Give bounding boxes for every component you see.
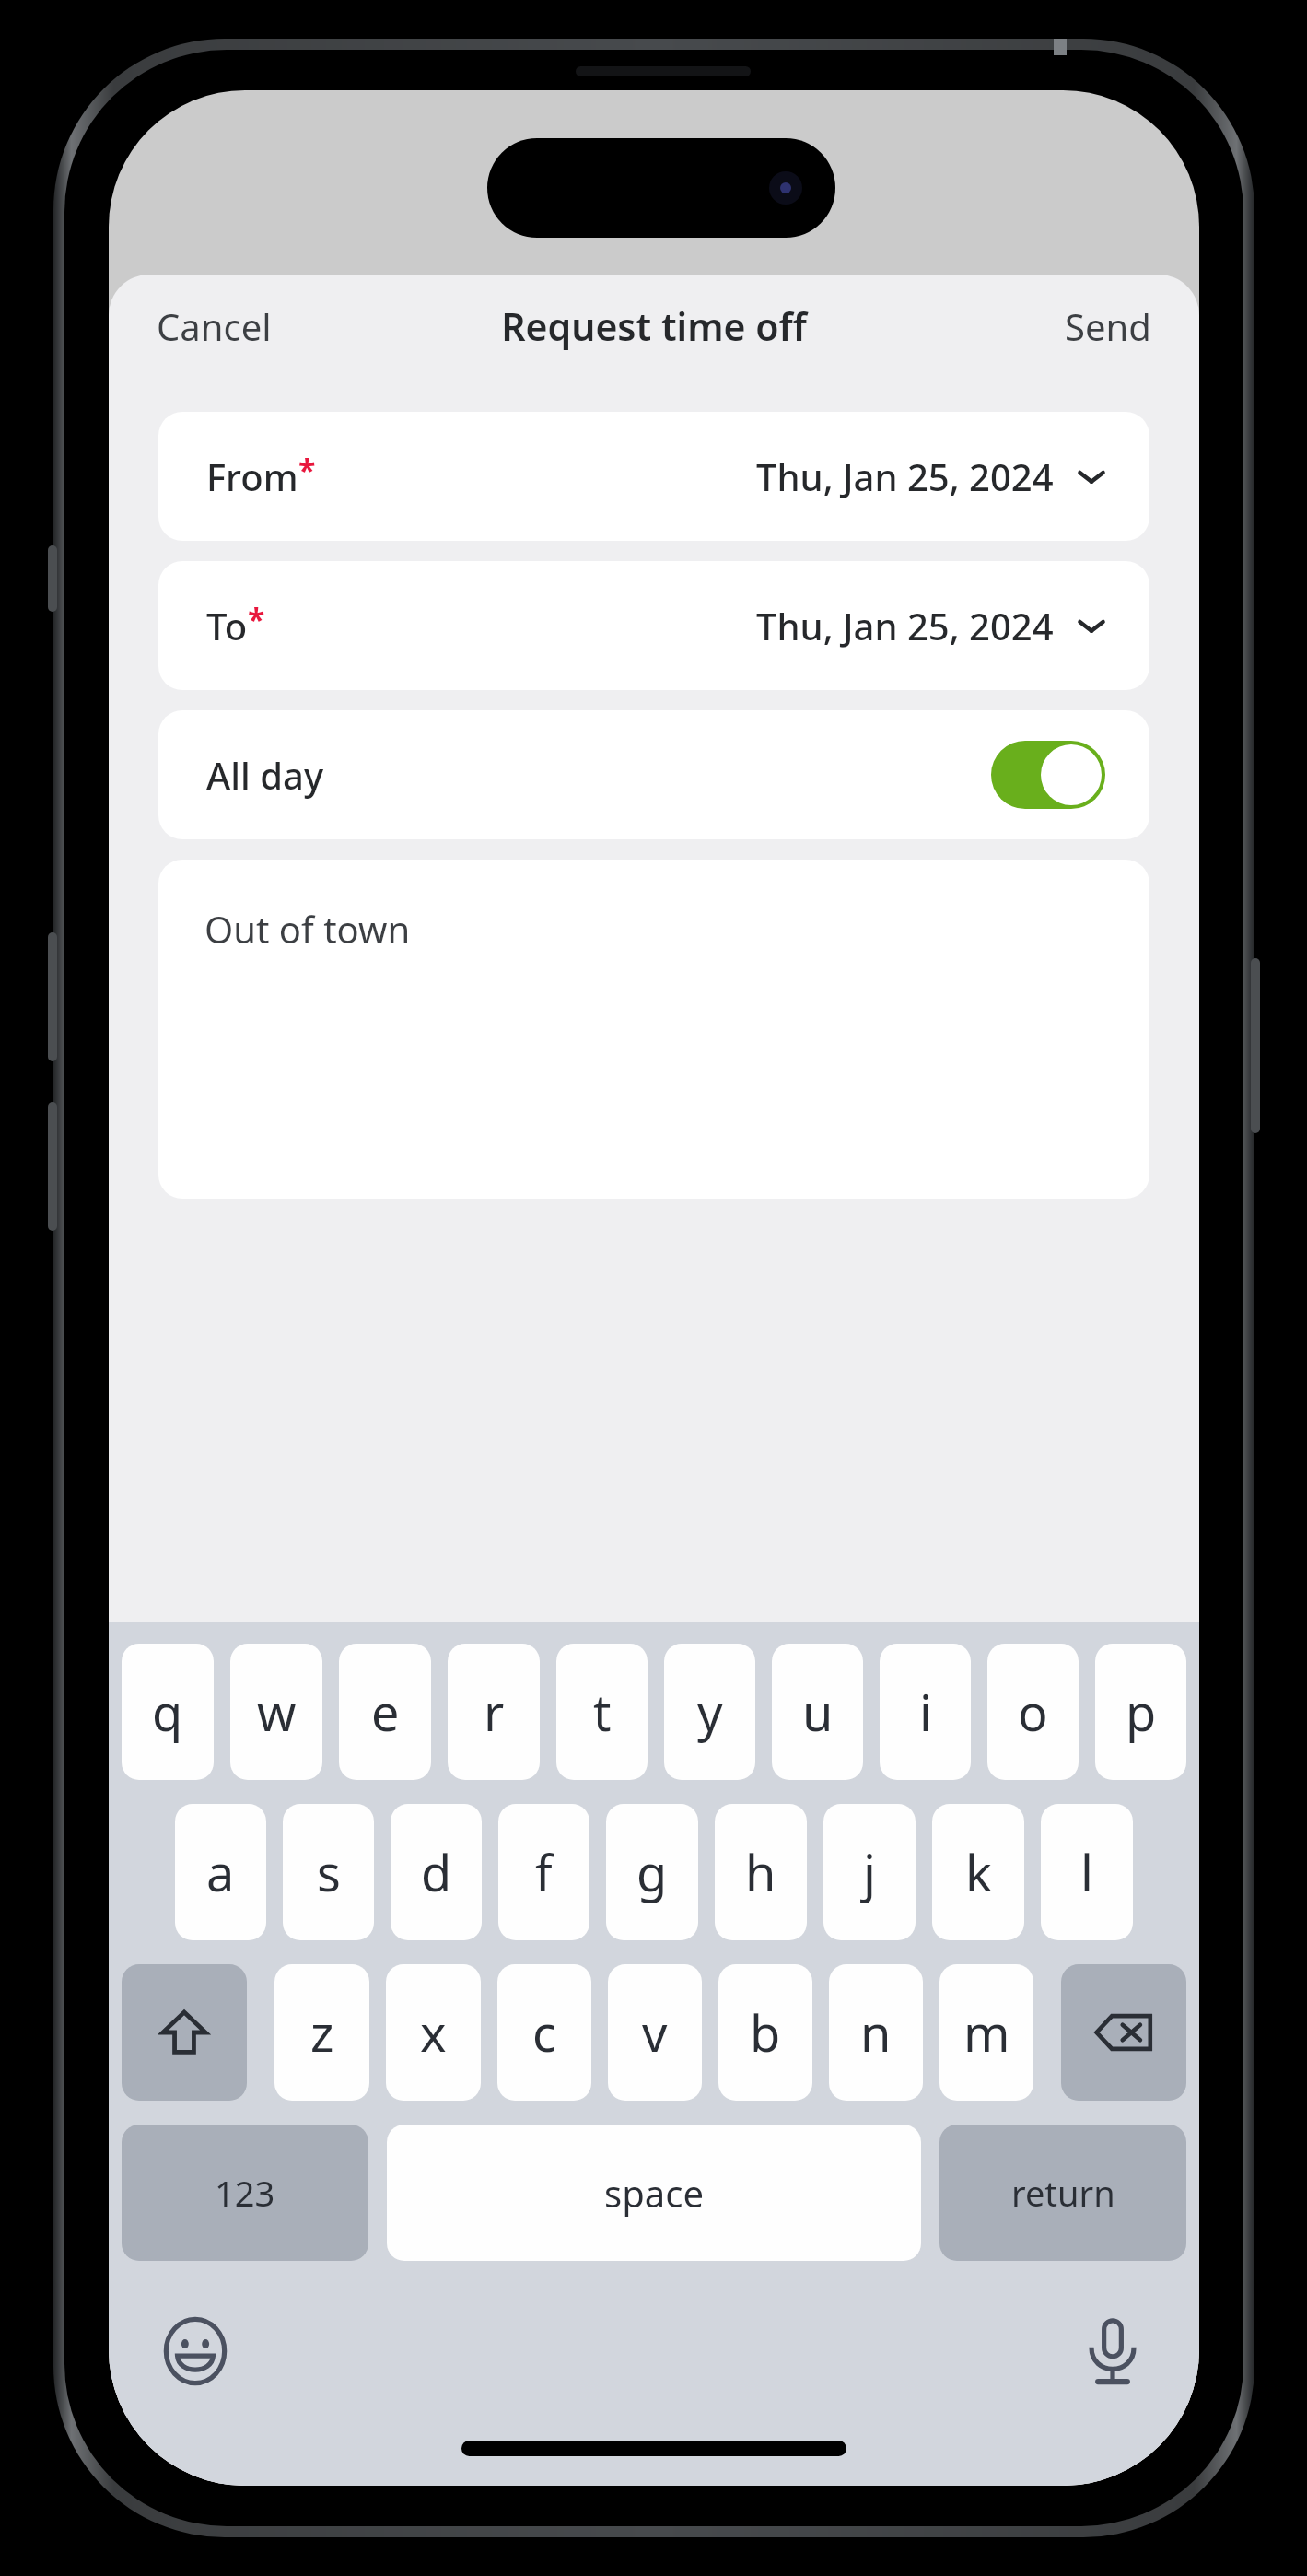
button[interactable]: All day toggle, on xyxy=(991,741,1105,809)
button[interactable]: f xyxy=(498,1804,589,1940)
staticText: p xyxy=(1126,1678,1157,1746)
button[interactable]: o xyxy=(987,1644,1079,1780)
staticText: a xyxy=(206,1838,235,1906)
button[interactable]: space xyxy=(387,2125,921,2261)
button[interactable]: p xyxy=(1095,1644,1186,1780)
staticText: i xyxy=(919,1678,932,1746)
button[interactable]: Shift xyxy=(122,1964,247,2101)
button[interactable]: a xyxy=(175,1804,266,1940)
button[interactable]: Backspace xyxy=(1061,1964,1186,2101)
staticText: z xyxy=(310,1998,334,2067)
button[interactable]: b xyxy=(718,1964,812,2101)
staticText: r xyxy=(484,1678,505,1746)
staticText: j xyxy=(863,1838,876,1906)
staticText: Send xyxy=(1065,301,1151,351)
staticText: v xyxy=(642,1998,668,2067)
staticText: s xyxy=(317,1838,341,1906)
button[interactable]: v xyxy=(608,1964,702,2101)
staticText: w xyxy=(257,1678,297,1746)
button[interactable]: g xyxy=(606,1804,698,1940)
button[interactable]: return xyxy=(939,2125,1186,2261)
staticText: b xyxy=(750,1998,781,2067)
button[interactable]: Cancel xyxy=(136,290,292,362)
button[interactable]: s xyxy=(283,1804,374,1940)
staticText: q xyxy=(152,1678,183,1746)
staticText: u xyxy=(802,1678,834,1746)
button[interactable]: h xyxy=(715,1804,807,1940)
staticText: Cancel xyxy=(157,301,272,351)
staticText: y xyxy=(697,1678,723,1746)
button[interactable]: z xyxy=(274,1964,369,2101)
staticText: To xyxy=(206,601,248,650)
button[interactable]: d xyxy=(391,1804,482,1940)
button[interactable]: i xyxy=(880,1644,971,1780)
button[interactable]: k xyxy=(932,1804,1024,1940)
staticText: t xyxy=(593,1678,612,1746)
staticText: Thu, Jan 25, 2024 xyxy=(756,451,1054,501)
staticText: All day xyxy=(206,750,323,800)
button[interactable]: From xyxy=(158,412,1149,541)
button[interactable]: n xyxy=(829,1964,923,2101)
button[interactable]: Dictation xyxy=(1070,2309,1155,2394)
button[interactable]: r xyxy=(448,1644,540,1780)
button[interactable]: e xyxy=(339,1644,431,1780)
staticText: g xyxy=(636,1838,668,1906)
staticText: Thu, Jan 25, 2024 xyxy=(756,601,1054,650)
staticText: space xyxy=(604,2168,704,2218)
staticText: o xyxy=(1018,1678,1048,1746)
button[interactable]: Out of town xyxy=(158,860,1149,1199)
staticText: Out of town xyxy=(204,904,411,954)
button[interactable]: m xyxy=(939,1964,1033,2101)
staticText: n xyxy=(860,1998,892,2067)
button[interactable]: To xyxy=(158,561,1149,690)
staticText: d xyxy=(421,1838,452,1906)
button[interactable]: y xyxy=(664,1644,755,1780)
button[interactable]: q xyxy=(122,1644,214,1780)
button[interactable]: Send xyxy=(1044,290,1172,362)
staticText: return xyxy=(1011,2169,1115,2217)
button[interactable]: t xyxy=(556,1644,648,1780)
staticText: k xyxy=(965,1838,992,1906)
staticText: l xyxy=(1080,1838,1093,1906)
staticText: c xyxy=(532,1998,556,2067)
staticText: * xyxy=(298,449,316,491)
staticText: f xyxy=(535,1838,553,1906)
staticText: Request time off xyxy=(501,300,807,352)
staticText: From xyxy=(206,451,298,501)
staticText: * xyxy=(248,598,265,640)
button[interactable]: j xyxy=(823,1804,916,1940)
button[interactable]: u xyxy=(772,1644,863,1780)
staticText: h xyxy=(745,1838,776,1906)
button[interactable]: w xyxy=(230,1644,322,1780)
button[interactable]: 123 xyxy=(122,2125,368,2261)
staticText: m xyxy=(963,1998,1010,2067)
button[interactable]: Emoji keyboard xyxy=(153,2309,238,2394)
staticText: 123 xyxy=(215,2169,275,2217)
staticText: e xyxy=(371,1678,400,1746)
staticText: x xyxy=(420,1998,447,2067)
button[interactable]: c xyxy=(497,1964,591,2101)
button[interactable]: x xyxy=(386,1964,481,2101)
button[interactable]: l xyxy=(1041,1804,1133,1940)
